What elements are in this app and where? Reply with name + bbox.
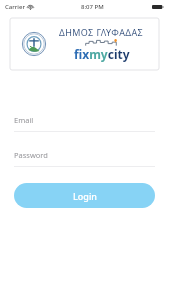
button[interactable]: Login (14, 183, 155, 208)
staticText: Password (14, 150, 48, 160)
staticText: Login (73, 190, 97, 202)
staticText: Email (14, 115, 34, 125)
staticText: Carrier (5, 3, 25, 11)
staticText: ΔΗΜΟΣ ΓΛΥΦΑΔΑΣ (59, 26, 144, 38)
button[interactable]: Email (14, 113, 155, 127)
staticText: fixmycity (74, 46, 130, 62)
button[interactable]: Password (14, 148, 155, 162)
staticText: 8:07 PM (81, 3, 104, 11)
